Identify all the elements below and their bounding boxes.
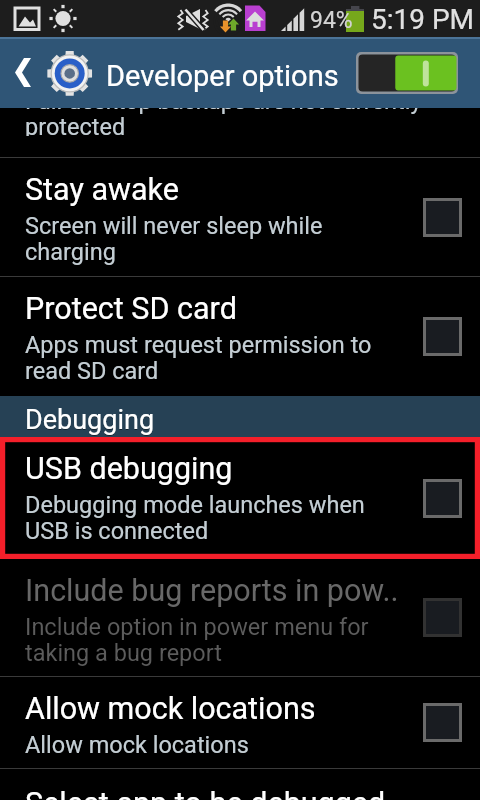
button[interactable]: Allow mock locations (0, 677, 480, 768)
staticText: Debugging mode launches when USB is conn… (25, 491, 365, 545)
staticText: Allow mock locations (25, 691, 480, 727)
staticText: USB debugging (25, 451, 480, 487)
staticText: Protect SD card (25, 291, 480, 327)
staticText: Select app to be debugged (25, 786, 386, 800)
staticText: Debugging (25, 404, 155, 436)
staticText: 5:19 PM (371, 3, 475, 36)
staticText: Debugging (25, 405, 155, 437)
staticText: Include bug reports in pow.. (25, 573, 480, 609)
button[interactable]: Toggle developer options (356, 52, 458, 94)
button[interactable]: Full desktop backups are not currently p… (0, 108, 480, 157)
staticText: Full desktop backups are not currently p… (25, 108, 422, 136)
staticText: Developer options (106, 59, 339, 93)
button[interactable]: Select app to be debugged (0, 769, 480, 800)
staticText: 94% (310, 7, 353, 34)
button[interactable]: Protect SD card (0, 277, 480, 396)
staticText: Apps must request permission to read SD … (25, 331, 372, 385)
button[interactable]: USB debugging (0, 437, 480, 559)
button[interactable]: Navigate up (0, 37, 44, 108)
staticText: Include option in power menu for taking … (25, 613, 369, 667)
button[interactable]: Include bug reports in pow.. (0, 559, 480, 676)
button[interactable]: Stay awake (0, 158, 480, 276)
staticText: Allow mock locations (25, 731, 249, 759)
staticText: Stay awake (25, 172, 480, 208)
staticText: Screen will never sleep while charging (25, 212, 323, 266)
